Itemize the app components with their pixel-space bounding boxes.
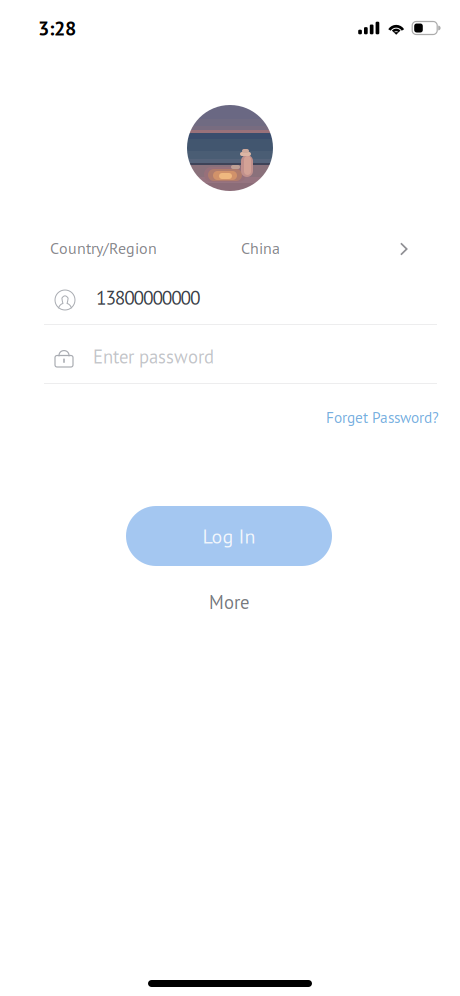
staticText: China — [241, 238, 280, 258]
button[interactable]: Log In — [126, 506, 332, 566]
staticText: Country/Region — [50, 238, 157, 258]
staticText: 13800000000 — [96, 285, 201, 310]
button[interactable]: Forget Password? — [316, 400, 449, 434]
button[interactable]: Country/Region — [0, 226, 460, 270]
staticText: 3:28 — [38, 15, 76, 41]
staticText: Enter password — [93, 344, 214, 369]
staticText: Log In — [202, 523, 255, 549]
button[interactable]: More — [189, 582, 269, 622]
staticText: Forget Password? — [326, 407, 439, 427]
staticText: More — [209, 590, 249, 614]
